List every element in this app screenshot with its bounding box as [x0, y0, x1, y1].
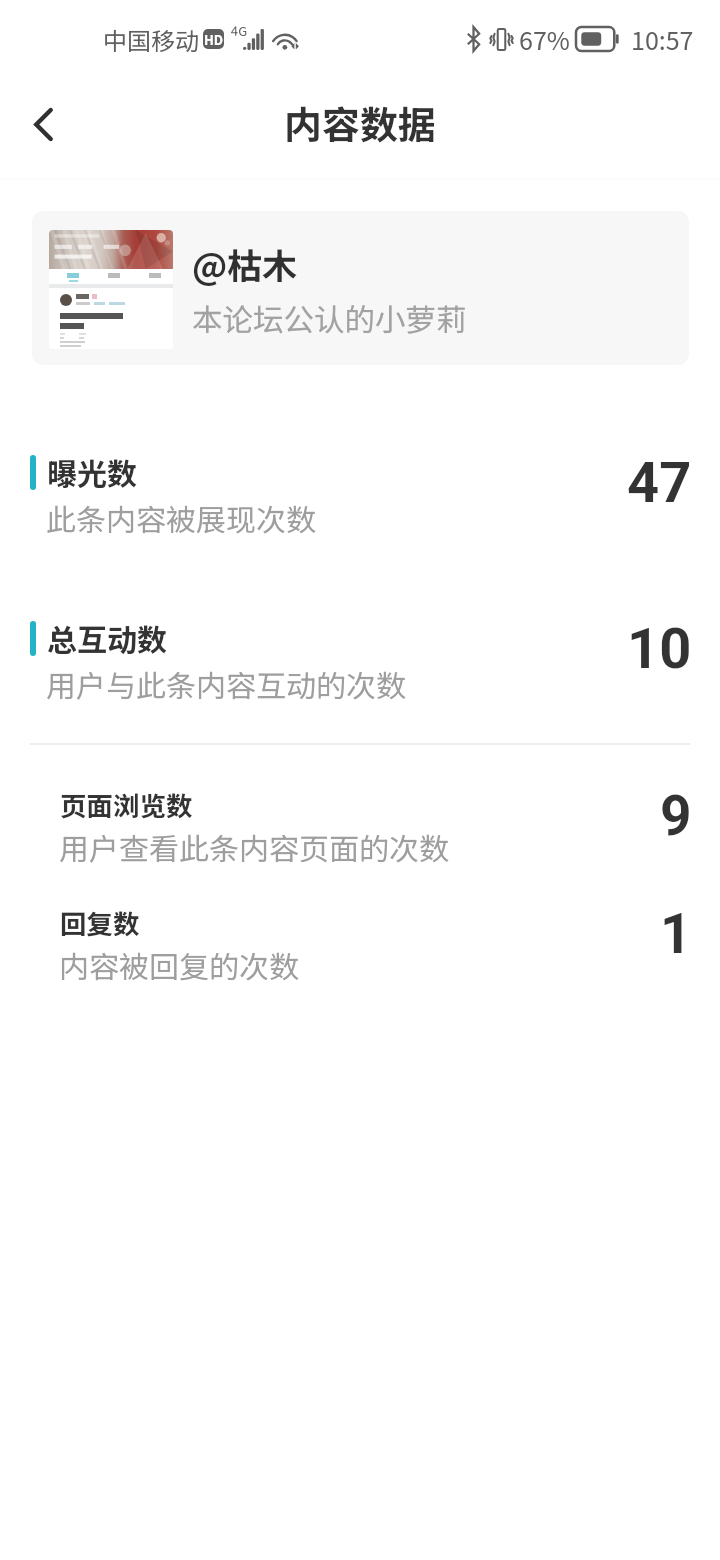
- staticText: 1: [660, 902, 692, 966]
- staticText: 中国移动: [103, 22, 199, 57]
- staticText: 页面浏览数: [60, 785, 193, 823]
- staticText: 曝光数: [47, 450, 137, 493]
- staticText: 本论坛公认的小萝莉: [192, 296, 467, 340]
- button[interactable]: 总互动数: [0, 591, 720, 721]
- staticText: 9: [660, 784, 692, 848]
- staticText: 67%: [519, 21, 570, 57]
- staticText: 内容数据: [284, 95, 437, 147]
- button[interactable]: 回复数: [0, 881, 720, 996]
- staticText: 10: [627, 616, 692, 682]
- staticText: 4G: [231, 21, 248, 40]
- button[interactable]: Back: [8, 89, 78, 159]
- staticText: HD: [204, 30, 224, 49]
- button[interactable]: 页面浏览数: [0, 763, 720, 878]
- staticText: 用户查看此条内容页面的次数: [59, 825, 449, 868]
- staticText: 用户与此条内容互动的次数: [46, 662, 406, 705]
- staticText: 10:57: [631, 21, 694, 57]
- button[interactable]: 曝光数: [0, 425, 720, 555]
- staticText: 总互动数: [47, 616, 167, 659]
- staticText: 内容被回复的次数: [59, 943, 299, 986]
- staticText: 47: [627, 450, 692, 516]
- staticText: @枯木: [192, 238, 298, 289]
- staticText: 回复数: [60, 903, 140, 941]
- button[interactable]: @枯木: [32, 211, 689, 365]
- staticText: 此条内容被展现次数: [46, 496, 316, 539]
